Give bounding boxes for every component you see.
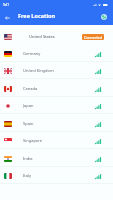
button[interactable]: Connected [82,34,104,40]
staticText: Free Location [18,12,56,19]
staticText: Canada [23,86,38,91]
staticText: India [23,156,33,161]
button[interactable]: Japan [0,97,113,114]
staticText: United States [29,34,55,39]
staticText: Germany [23,51,41,56]
button[interactable]: United States [0,25,113,46]
button[interactable]: United Kingdom [0,62,113,79]
button[interactable]: Singapore [0,132,113,149]
staticText: Japan [23,103,34,108]
button[interactable]: Germany [0,45,113,62]
button[interactable]: Back [2,13,12,23]
staticText: Connected [84,35,102,40]
button[interactable]: India [0,150,113,167]
staticText: Spain [23,121,34,126]
staticText: Singapore [23,138,43,143]
button[interactable]: Change location [99,12,108,21]
staticText: 9:41 [3,3,9,7]
button[interactable]: Italy [0,167,113,184]
button[interactable]: Spain [0,115,113,132]
staticText: Italy [23,173,32,178]
staticText: United Kingdom [23,68,54,73]
button[interactable]: Canada [0,80,113,97]
